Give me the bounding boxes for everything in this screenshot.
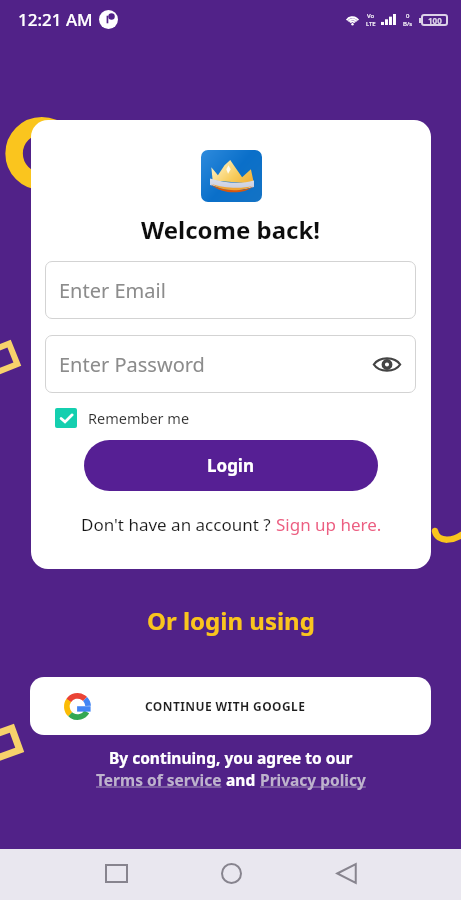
staticText: B/s: [403, 20, 413, 28]
staticText: 100: [428, 15, 442, 26]
staticText: Enter Email: [59, 277, 166, 304]
button[interactable]: CONTINUE WITH GOOGLE: [30, 677, 431, 735]
staticText: Remember me: [88, 408, 190, 428]
staticText: 0: [406, 12, 410, 20]
staticText: 12:21 AM: [18, 8, 93, 31]
staticText: Or login using: [147, 604, 315, 637]
staticText: Login: [207, 454, 255, 477]
staticText: Enter Password: [59, 351, 205, 378]
button[interactable]: Enter Email: [45, 261, 416, 319]
staticText: Welcome back!: [141, 213, 321, 246]
staticText: Vo: [367, 12, 375, 20]
button[interactable]: Show password: [372, 349, 402, 379]
button[interactable]: Sign up here.: [276, 513, 382, 536]
staticText: CONTINUE WITH GOOGLE: [145, 698, 306, 714]
button[interactable]: Back: [322, 849, 370, 897]
button[interactable]: Privacy policy: [260, 769, 366, 790]
button[interactable]: Remember me: [51, 404, 194, 432]
staticText: By continuing, you agree to our: [109, 747, 353, 768]
button[interactable]: Home: [207, 849, 255, 897]
staticText: Don't have an account ?: [81, 513, 276, 536]
button[interactable]: Login: [84, 440, 378, 491]
button[interactable]: Enter Password: [45, 335, 416, 393]
staticText: LTE: [366, 20, 376, 28]
button[interactable]: Terms of service: [96, 769, 222, 790]
button[interactable]: Recents: [92, 849, 140, 897]
staticText: and: [222, 769, 260, 790]
